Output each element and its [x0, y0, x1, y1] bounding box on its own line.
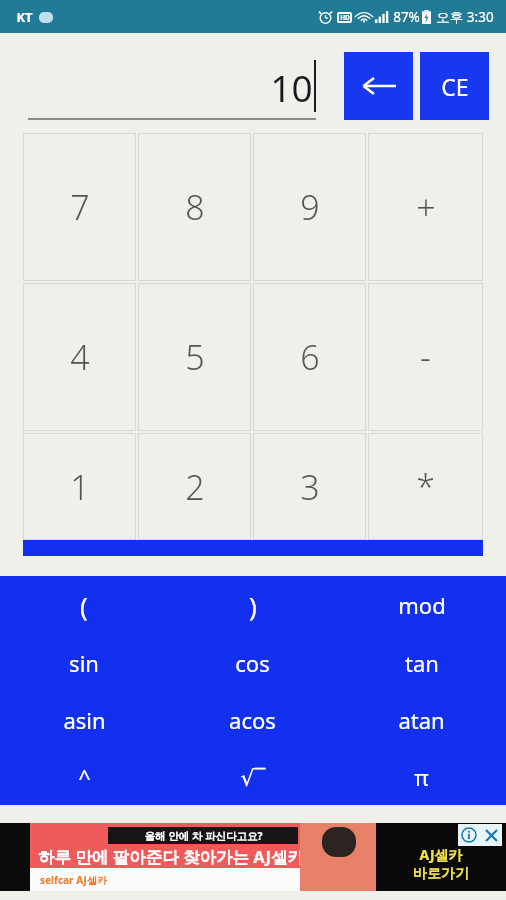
staticText: 9: [300, 184, 320, 230]
staticText: AJ셀카: [419, 845, 463, 864]
button[interactable]: 5: [138, 283, 251, 431]
staticText: 87%: [393, 8, 420, 26]
staticText: 8: [185, 184, 205, 230]
button[interactable]: π: [337, 748, 506, 805]
staticText: +: [416, 184, 436, 230]
staticText: 하루 만에 팔아준다 찾아가는 AJ셀카: [38, 845, 304, 868]
staticText: sin: [69, 648, 99, 678]
staticText: tan: [405, 648, 439, 678]
button[interactable]: CE: [420, 52, 489, 120]
staticText: acos: [229, 705, 276, 735]
staticText: -: [420, 334, 431, 380]
button[interactable]: +: [368, 133, 483, 281]
staticText: mod: [398, 590, 446, 620]
button[interactable]: 10: [28, 38, 316, 120]
button[interactable]: acos: [168, 691, 337, 748]
staticText: KT: [16, 8, 33, 26]
staticText: 7: [70, 184, 90, 230]
staticText: cos: [235, 648, 270, 678]
staticText: 1: [70, 464, 90, 510]
staticText: 올해 안에 차 파신다고요?: [144, 829, 263, 843]
button[interactable]: 7: [23, 133, 136, 281]
staticText: √‾: [240, 762, 266, 792]
button[interactable]: 3: [253, 433, 366, 540]
staticText: 10: [270, 62, 313, 112]
button[interactable]: (: [0, 576, 168, 634]
button[interactable]: atan: [337, 691, 506, 748]
button[interactable]: mod: [337, 576, 506, 634]
staticText: HD: [340, 13, 350, 22]
staticText: 6: [300, 334, 320, 380]
button[interactable]: √‾: [168, 748, 337, 805]
staticText: 5: [185, 334, 205, 380]
staticText: selfcar AJ셀카: [40, 873, 107, 887]
staticText: asin: [63, 705, 106, 735]
staticText: 3: [300, 464, 320, 510]
button[interactable]: Ad info: [458, 824, 480, 846]
button[interactable]: sin: [0, 634, 168, 691]
button[interactable]: Advertisement: [0, 823, 506, 891]
staticText: 4: [70, 334, 90, 380]
staticText: atan: [398, 705, 445, 735]
button[interactable]: Close ad: [480, 824, 502, 846]
button[interactable]: *: [368, 433, 483, 540]
button[interactable]: tan: [337, 634, 506, 691]
button[interactable]: 2: [138, 433, 251, 540]
button[interactable]: 4: [23, 283, 136, 431]
staticText: CE: [441, 71, 469, 102]
button[interactable]: ^: [0, 748, 168, 805]
button[interactable]: Backspace: [344, 52, 413, 120]
staticText: π: [414, 762, 429, 792]
button[interactable]: 9: [253, 133, 366, 281]
staticText: ^: [78, 762, 91, 792]
button[interactable]: ): [168, 576, 337, 634]
staticText: *: [416, 464, 435, 510]
button[interactable]: 8: [138, 133, 251, 281]
staticText: ): [249, 588, 257, 623]
button[interactable]: 1: [23, 433, 136, 540]
button[interactable]: asin: [0, 691, 168, 748]
button[interactable]: 6: [253, 283, 366, 431]
staticText: 바로가기: [413, 865, 469, 883]
button[interactable]: -: [368, 283, 483, 431]
staticText: 2: [185, 464, 205, 510]
staticText: (: [80, 588, 88, 623]
staticText: 오후 3:30: [436, 8, 494, 26]
button[interactable]: cos: [168, 634, 337, 691]
